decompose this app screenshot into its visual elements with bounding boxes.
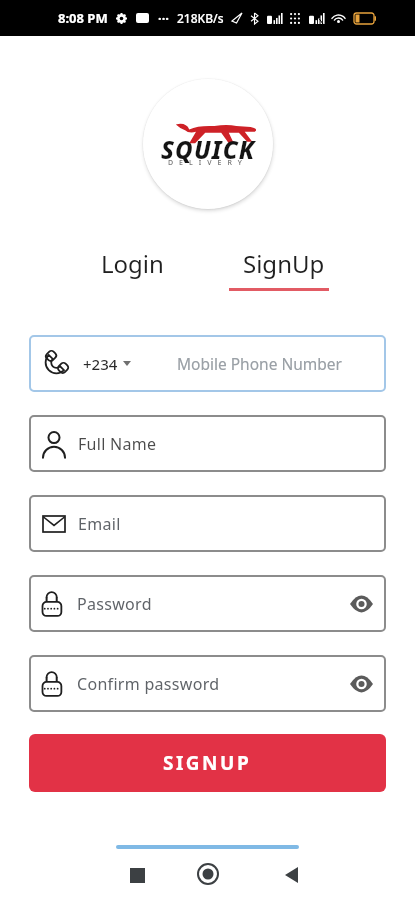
button[interactable]: SIGNUP <box>29 734 386 792</box>
staticText: SignUp <box>243 247 325 280</box>
staticText: SIGNUP <box>163 750 252 776</box>
button[interactable]: Confirm password <box>29 655 386 712</box>
button[interactable]: Login <box>57 247 208 280</box>
button[interactable]: SignUp <box>208 247 359 291</box>
staticText: Email <box>78 513 121 535</box>
staticText: SQUICK <box>161 133 256 166</box>
button[interactable] <box>123 861 151 889</box>
staticText: Login <box>101 247 164 280</box>
staticText: Mobile Phone Number <box>177 353 342 374</box>
button[interactable] <box>277 861 305 889</box>
staticText: DELIVERY <box>168 158 248 168</box>
button[interactable]: Email <box>29 495 386 552</box>
staticText: +234 <box>83 354 118 374</box>
staticText: 8:08 PM <box>58 9 108 27</box>
staticText: 218KB/s <box>177 10 224 26</box>
staticText: ··· <box>158 9 169 27</box>
staticText: Confirm password <box>77 673 220 695</box>
staticText: Full Name <box>78 433 157 455</box>
button[interactable]: Password <box>29 575 386 632</box>
button[interactable]: Full Name <box>29 415 386 472</box>
button[interactable]: +234 <box>29 335 386 392</box>
staticText: Password <box>77 593 152 615</box>
button[interactable] <box>194 860 222 888</box>
